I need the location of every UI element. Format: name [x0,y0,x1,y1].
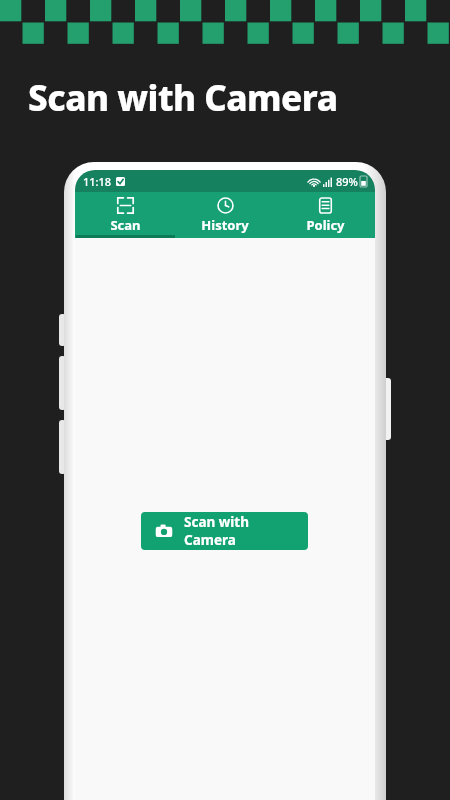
button[interactable]: History [175,192,275,238]
button[interactable]: Scan [75,192,175,238]
staticText: 89% [336,174,358,189]
other: Camera [155,522,173,540]
staticText: 11:18 [83,174,112,189]
staticText: Scan with Camera [184,513,294,549]
staticText: Scan with Camera [28,74,338,122]
button[interactable]: Camera [141,512,308,550]
staticText: Scan [110,216,141,234]
staticText: Policy [306,216,345,234]
staticText: History [201,216,249,234]
button[interactable]: Policy [275,192,375,238]
